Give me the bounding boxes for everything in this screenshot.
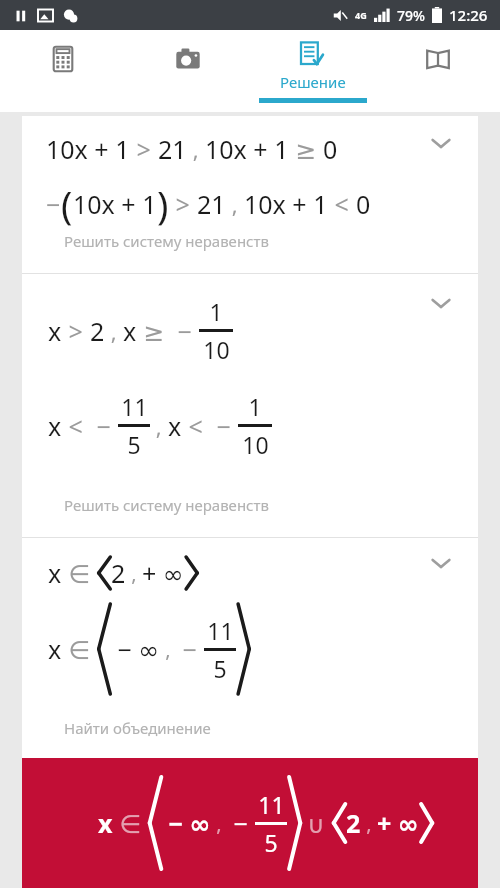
staticText: − [227,806,255,840]
staticText: 1 [248,391,262,422]
button[interactable]: Expand [424,286,458,320]
staticText: ∪ [301,807,332,840]
staticText: 10 [242,429,269,460]
staticText: 12:26 [449,5,488,25]
staticText: ) [157,178,169,230]
staticText: 2 [111,556,126,590]
staticText: > [130,132,158,166]
button[interactable]: 10x + 1 [22,116,478,273]
button[interactable]: Book [375,30,500,112]
staticText: < [182,409,210,443]
staticText: 10x + 1 [73,187,157,221]
staticText: + ∞ [142,556,184,590]
staticText: , [126,560,142,587]
staticText: ∈ [62,632,97,666]
staticText: − [90,409,118,443]
staticText: , [211,810,227,837]
staticText: 5 [213,653,227,684]
staticText: ≥ [289,132,323,166]
staticText: , [361,810,377,837]
button[interactable]: x [22,274,478,537]
staticText: , [150,411,168,441]
staticText: 10x + 1 [46,132,130,166]
staticText: 11 [121,391,148,422]
button[interactable]: Решение [250,30,375,112]
staticText: Решить систему неравенств [64,231,269,251]
staticText: 2 [90,314,105,348]
staticText: 5 [127,429,141,460]
staticText: − [210,409,238,443]
staticText: 0 [323,132,338,166]
staticText: 79% [397,6,425,25]
staticText: − [171,314,199,348]
staticText: x [123,314,137,348]
staticText: 11 [258,789,285,820]
staticText: − ∞ [111,632,160,666]
staticText: 1 [209,296,223,327]
staticText: − ∞ [162,806,211,840]
staticText: < [62,409,90,443]
staticText: ( [61,178,73,230]
staticText: x [48,632,62,666]
staticText: + ∞ [377,806,419,840]
staticText: x [98,806,113,840]
staticText: x [168,409,182,443]
staticText: 10 [203,334,230,365]
staticText: > [62,314,90,348]
button[interactable]: Expand [424,126,458,160]
button[interactable]: x [22,538,478,758]
staticText: − [176,632,204,666]
staticText: Решить систему неравенств [64,495,269,515]
staticText: ≥ [137,314,171,348]
staticText: 2 [346,806,361,840]
button[interactable]: x [22,758,478,888]
staticText: > [169,187,197,221]
staticText: x [48,556,62,590]
staticText: 0 [356,187,371,221]
staticText: Найти объединение [64,718,211,738]
staticText: 21 [158,132,187,166]
staticText: , [105,316,123,346]
staticText: ∈ [113,806,148,840]
staticText: , [160,636,176,663]
staticText: 5 [264,827,278,858]
staticText: < [328,187,356,221]
button[interactable]: Calculator [0,30,125,112]
staticText: 11 [207,615,234,646]
staticText: x [48,314,62,348]
staticText: 21 [197,187,226,221]
button[interactable]: Camera [125,30,250,112]
staticText: 10x + 1 [244,187,328,221]
staticText: , [226,189,244,219]
staticText: − [46,187,61,221]
staticText: ∈ [62,556,97,590]
staticText: x [48,409,62,443]
staticText: 10x + 1 [205,132,289,166]
staticText: , [187,134,205,164]
staticText: Решение [280,72,346,92]
staticText: 4G [355,9,367,21]
button[interactable]: Expand [424,546,458,580]
